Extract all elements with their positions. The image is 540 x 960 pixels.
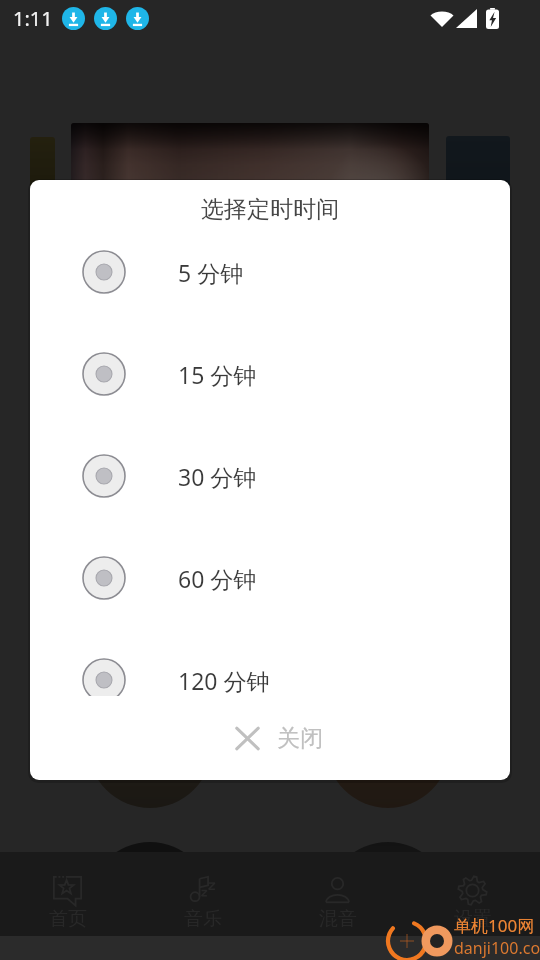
button[interactable]: Sound scene <box>90 514 214 638</box>
button[interactable]: 5 分钟 <box>30 221 510 323</box>
staticText: 首页 <box>49 907 87 931</box>
staticText: 1:11 <box>13 5 53 32</box>
staticText: 音乐 <box>184 907 222 931</box>
staticText: 60 分钟 <box>178 563 257 594</box>
button[interactable]: Sound scene <box>326 684 450 808</box>
staticText: 设置 <box>454 907 492 931</box>
staticText: 选择定时时间 <box>201 195 339 224</box>
staticText: 关闭 <box>277 724 323 753</box>
button[interactable]: 120 分钟 <box>30 629 510 696</box>
button[interactable]: Featured banner <box>71 123 429 289</box>
button[interactable]: Sound scene <box>90 338 214 462</box>
staticText: 30 分钟 <box>178 461 257 492</box>
button[interactable]: Sound scene <box>88 842 212 960</box>
staticText: 单机100网 <box>454 914 535 937</box>
button[interactable]: Sound scene <box>88 684 212 808</box>
staticText: 5 分钟 <box>178 257 244 288</box>
button[interactable]: Sound scene <box>326 842 450 960</box>
button[interactable]: 15 分钟 <box>30 323 510 425</box>
button[interactable]: 混音 <box>270 852 405 936</box>
staticText: danji100.com <box>454 937 540 959</box>
button[interactable]: 60 分钟 <box>30 527 510 629</box>
staticText: 混音 <box>319 907 357 931</box>
button[interactable]: 设置 <box>405 852 540 936</box>
staticText: 120 分钟 <box>178 665 270 696</box>
button[interactable]: 关闭 <box>210 712 347 765</box>
staticText: 15 分钟 <box>178 359 257 390</box>
button[interactable]: 30 分钟 <box>30 425 510 527</box>
